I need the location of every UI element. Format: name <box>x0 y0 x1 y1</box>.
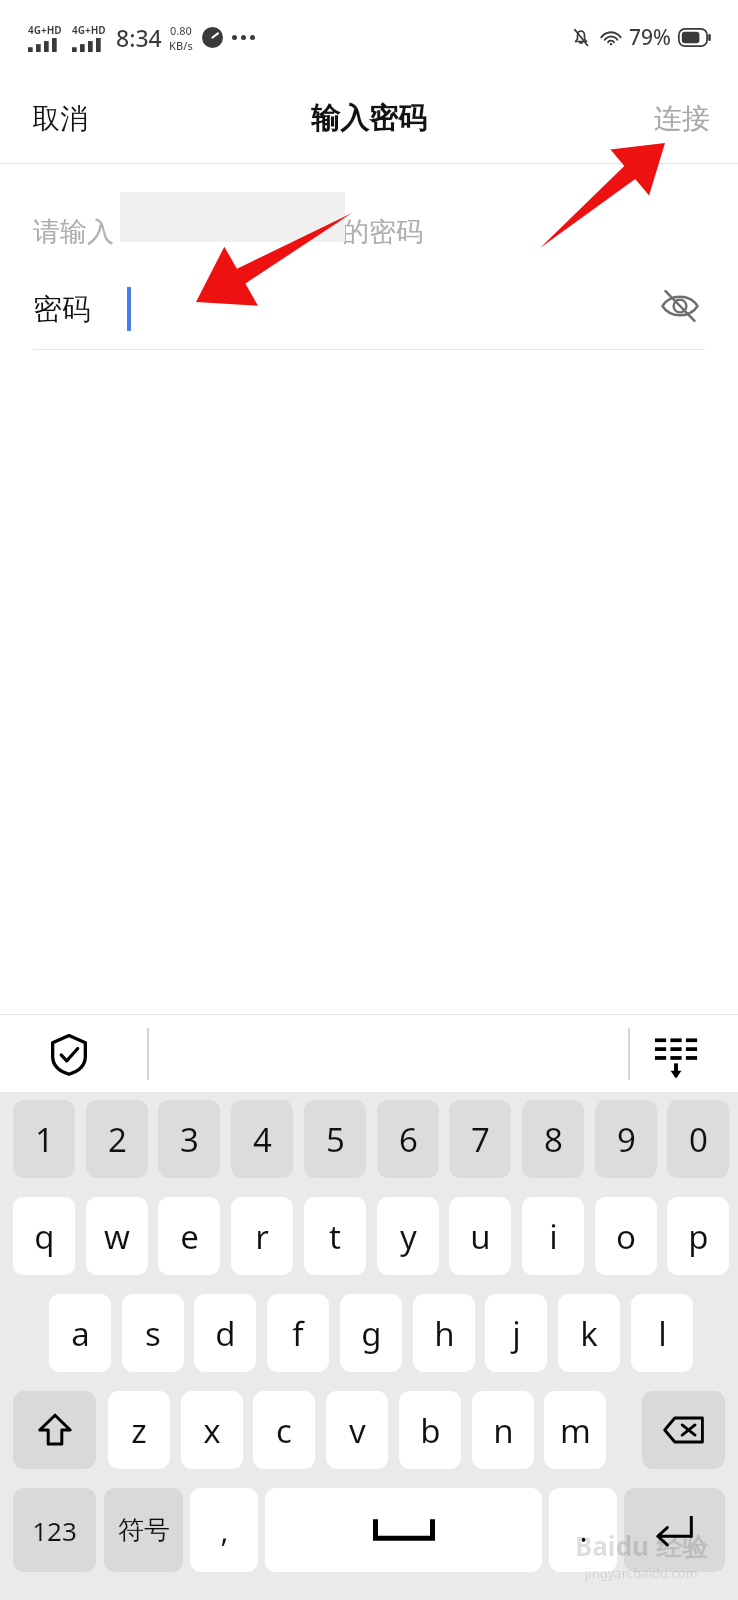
button[interactable]: e <box>158 1197 220 1275</box>
button[interactable]: 4 <box>231 1100 293 1178</box>
staticText: l <box>658 1311 667 1356</box>
staticText: 取消 <box>32 101 88 136</box>
button[interactable]: u <box>449 1197 511 1275</box>
staticText: m <box>560 1408 591 1453</box>
staticText: p <box>688 1214 709 1259</box>
button[interactable]: f <box>267 1294 329 1372</box>
staticText: e <box>180 1214 199 1259</box>
staticText: jingyan.baidu.com <box>585 1564 698 1582</box>
button[interactable]: 取消 <box>0 85 120 152</box>
button[interactable]: 8 <box>522 1100 584 1178</box>
button[interactable]: d <box>194 1294 256 1372</box>
staticText: KB/s <box>169 38 193 53</box>
button[interactable]: v <box>326 1391 388 1469</box>
staticText: 9 <box>617 1117 636 1162</box>
button[interactable]: r <box>231 1197 293 1275</box>
staticText: s <box>145 1311 161 1356</box>
button[interactable]: 5 <box>304 1100 366 1178</box>
button[interactable]: c <box>253 1391 315 1469</box>
button[interactable]: 2 <box>86 1100 148 1178</box>
staticText: . <box>579 1510 588 1551</box>
button[interactable]: 1 <box>13 1100 75 1178</box>
button[interactable]: Space <box>265 1488 542 1572</box>
button[interactable]: p <box>667 1197 729 1275</box>
button[interactable]: o <box>595 1197 657 1275</box>
staticText: f <box>292 1311 304 1356</box>
staticText: 请输入 <box>33 215 114 249</box>
button[interactable]: b <box>399 1391 461 1469</box>
staticText: 输入密码 <box>311 100 427 137</box>
button[interactable]: x <box>181 1391 243 1469</box>
staticText: 符号 <box>118 1514 170 1547</box>
staticText: t <box>329 1214 341 1259</box>
button[interactable]: Secure input <box>40 1025 98 1083</box>
button[interactable]: j <box>485 1294 547 1372</box>
staticText: 连接 <box>654 101 710 136</box>
staticText: o <box>616 1214 636 1259</box>
button[interactable]: 3 <box>158 1100 220 1178</box>
staticText: , <box>220 1510 229 1551</box>
button[interactable]: Show password <box>646 272 714 340</box>
staticText: n <box>493 1408 514 1453</box>
staticText: 8:34 <box>116 22 162 53</box>
button[interactable]: q <box>13 1197 75 1275</box>
button[interactable]: 9 <box>595 1100 657 1178</box>
button[interactable]: 7 <box>449 1100 511 1178</box>
staticText: 0.80 <box>170 23 192 38</box>
button[interactable]: m <box>544 1391 606 1469</box>
staticText: j <box>512 1311 521 1356</box>
staticText: h <box>434 1311 455 1356</box>
button[interactable]: h <box>413 1294 475 1372</box>
button[interactable]: 123 <box>13 1488 96 1572</box>
button[interactable]: w <box>86 1197 148 1275</box>
staticText: 密码 <box>33 291 91 328</box>
staticText: 4G+HD <box>28 23 62 37</box>
staticText: c <box>276 1408 292 1453</box>
staticText: k <box>580 1311 598 1356</box>
staticText: v <box>349 1408 366 1453</box>
staticText: 3 <box>180 1117 199 1162</box>
staticText: 0 <box>689 1117 708 1162</box>
staticText: x <box>203 1408 221 1453</box>
button[interactable]: Hide keyboard <box>644 1022 708 1086</box>
button[interactable]: . <box>549 1488 617 1572</box>
button[interactable]: i <box>522 1197 584 1275</box>
staticText: 79% <box>629 23 671 52</box>
staticText: 1 <box>35 1117 54 1162</box>
button[interactable]: Backspace <box>642 1391 725 1469</box>
staticText: 4 <box>253 1117 272 1162</box>
staticText: w <box>104 1214 130 1259</box>
button[interactable]: k <box>558 1294 620 1372</box>
button[interactable]: y <box>377 1197 439 1275</box>
button[interactable]: Enter <box>624 1488 725 1572</box>
button[interactable]: s <box>122 1294 184 1372</box>
button[interactable]: 符号 <box>104 1488 183 1572</box>
button[interactable]: , <box>190 1488 258 1572</box>
staticText: 123 <box>32 1513 77 1548</box>
staticText: q <box>34 1214 55 1259</box>
staticText: 5 <box>326 1117 345 1162</box>
button[interactable]: t <box>304 1197 366 1275</box>
staticText: r <box>255 1214 269 1259</box>
staticText: g <box>361 1311 382 1356</box>
staticText: y <box>400 1214 417 1259</box>
staticText: 4G+HD <box>72 23 106 37</box>
staticText: b <box>420 1408 441 1453</box>
staticText: i <box>549 1214 558 1259</box>
staticText: Baidu 经验 <box>575 1528 708 1564</box>
button[interactable]: 6 <box>377 1100 439 1178</box>
staticText: u <box>470 1214 491 1259</box>
staticText: z <box>131 1408 147 1453</box>
button[interactable]: 连接 <box>626 85 738 152</box>
button[interactable]: g <box>340 1294 402 1372</box>
staticText: 6 <box>399 1117 418 1162</box>
button[interactable]: 0 <box>667 1100 729 1178</box>
staticText: 7 <box>471 1117 490 1162</box>
button[interactable]: Shift <box>13 1391 96 1469</box>
button[interactable]: z <box>108 1391 170 1469</box>
button[interactable]: a <box>49 1294 111 1372</box>
button[interactable]: n <box>472 1391 534 1469</box>
staticText: 2 <box>108 1117 127 1162</box>
staticText: d <box>215 1311 236 1356</box>
button[interactable]: l <box>631 1294 693 1372</box>
